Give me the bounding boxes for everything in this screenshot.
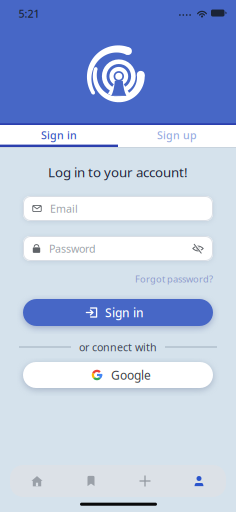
staticText: or connect with — [79, 340, 157, 354]
staticText: Forgot password? — [135, 273, 213, 285]
button[interactable]: Add — [118, 465, 172, 497]
staticText: Email — [50, 201, 78, 216]
button[interactable]: Sign in — [23, 299, 213, 326]
button[interactable]: Home — [10, 465, 64, 497]
button[interactable]: Email — [23, 196, 213, 221]
button[interactable]: Bookmarks — [64, 465, 118, 497]
button[interactable]: Google — [23, 362, 213, 388]
button[interactable]: Show password — [192, 243, 204, 253]
staticText: Sign in — [105, 304, 144, 320]
staticText: Sign up — [157, 128, 197, 142]
staticText: Sign in — [41, 128, 77, 142]
staticText: Log in to your account! — [48, 163, 188, 181]
button[interactable]: Forgot password? — [135, 273, 213, 285]
staticText: 5:21 — [18, 6, 39, 21]
staticText: Google — [111, 367, 151, 383]
button[interactable]: Sign up — [118, 125, 236, 147]
button[interactable]: Sign in — [0, 125, 118, 147]
button[interactable]: Profile — [172, 465, 226, 497]
staticText: Password — [49, 241, 96, 256]
